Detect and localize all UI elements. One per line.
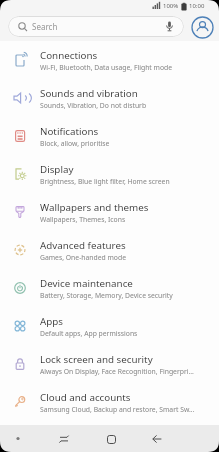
staticText: Brightness, Blue light filter, Home scre… [40,177,170,186]
staticText: Default apps, App permissions [40,329,138,338]
button[interactable] [52,427,76,451]
button[interactable]: Notifications [0,117,219,155]
staticText: Cloud and accounts [40,391,131,404]
staticText: Always On Display, Face Recognition, Fin… [40,367,194,376]
button[interactable]: Advanced features [0,231,219,269]
staticText: Wallpapers and themes [40,201,149,214]
staticText: Wi-Fi, Bluetooth, Data usage, Flight mod… [40,63,173,72]
button[interactable]: Cloud and accounts [0,383,219,421]
staticText: Display [40,163,74,176]
button[interactable]: Wallpapers and themes [0,193,219,231]
staticText: Battery, Storage, Memory, Device securit… [40,291,173,300]
button[interactable] [190,15,214,39]
staticText: Advanced features [40,239,126,252]
button[interactable] [145,427,169,451]
button[interactable] [99,427,123,451]
staticText: Wallpapers, Themes, Icons [40,215,126,224]
button[interactable]: Search [8,16,184,37]
staticText: Sounds, Vibration, Do not disturb [40,101,147,110]
staticText: Apps [40,315,64,328]
staticText: Sounds and vibration [40,87,138,100]
staticText: 100% [163,2,179,10]
button[interactable]: Device maintenance [0,269,219,307]
button[interactable]: Apps [0,307,219,345]
staticText: Connections [40,49,98,62]
button[interactable]: Sounds and vibration [0,79,219,117]
button[interactable]: Lock screen and security [0,345,219,383]
staticText: Notifications [40,125,99,138]
button[interactable]: Connections [0,41,219,79]
staticText: Block, allow, prioritise [40,139,110,148]
staticText: Lock screen and security [40,353,153,366]
button[interactable]: Display [0,155,219,193]
staticText: Device maintenance [40,277,133,290]
staticText: Samsung Cloud, Backup and restore, Smart… [40,405,195,414]
staticText: Games, One-handed mode [40,253,126,262]
staticText: Search [32,21,58,32]
staticText: 10:00 [189,2,205,10]
